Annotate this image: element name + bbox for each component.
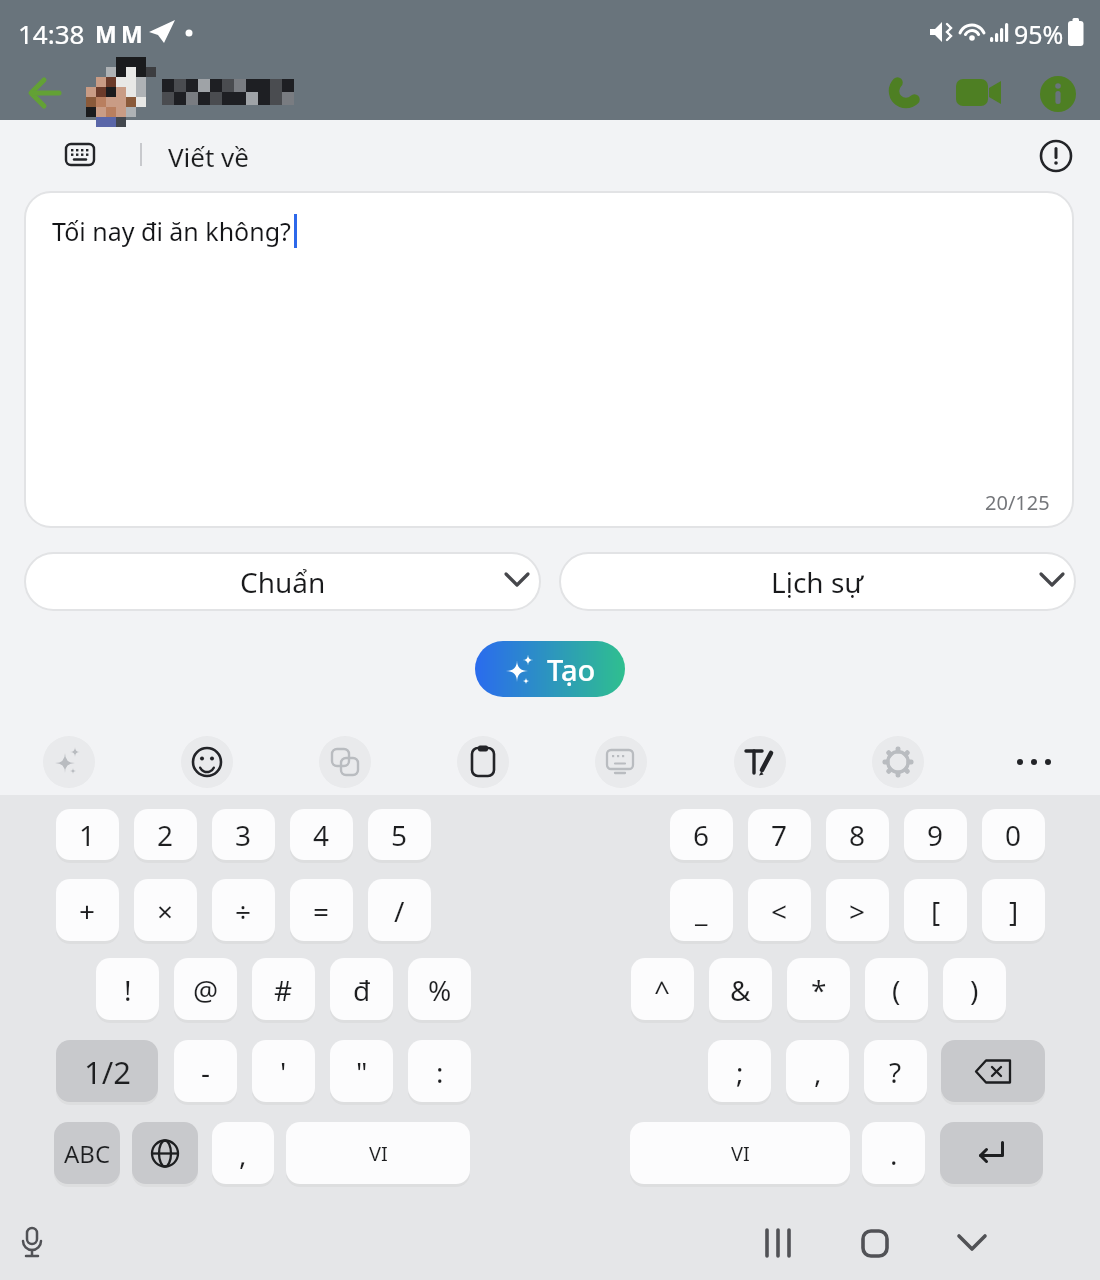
button[interactable]: / <box>368 879 431 942</box>
button[interactable]: ! <box>96 958 159 1021</box>
staticText: , <box>814 1053 822 1091</box>
staticText: Tối nay đi ăn không? <box>52 214 291 248</box>
button[interactable] <box>849 1217 901 1269</box>
button[interactable]: ABC <box>54 1122 120 1185</box>
button[interactable]: - <box>174 1040 237 1103</box>
staticText: 4 <box>313 816 330 854</box>
button[interactable]: % <box>408 958 471 1021</box>
staticText: 2 <box>157 816 174 854</box>
staticText: 20/125 <box>985 489 1050 516</box>
button[interactable]: Chuẩn <box>25 553 540 610</box>
button[interactable]: , <box>212 1122 274 1185</box>
button[interactable]: 7 <box>748 809 811 861</box>
staticText: VI <box>369 1140 388 1167</box>
staticText: 5 <box>391 816 408 854</box>
button[interactable]: , <box>786 1040 849 1103</box>
staticText: / <box>394 892 405 930</box>
button[interactable] <box>734 736 786 788</box>
button[interactable] <box>595 736 647 788</box>
button[interactable] <box>940 1122 1043 1185</box>
button[interactable]: _ <box>670 879 733 942</box>
button[interactable] <box>946 1217 998 1269</box>
staticText: × <box>157 892 174 930</box>
staticText: 0 <box>1005 816 1022 854</box>
button[interactable]: 6 <box>670 809 733 861</box>
staticText: 6 <box>693 816 710 854</box>
button[interactable]: + <box>56 879 119 942</box>
button[interactable] <box>872 736 924 788</box>
button[interactable]: < <box>748 879 811 942</box>
staticText: , <box>239 1135 247 1173</box>
button[interactable]: Lịch sự <box>560 553 1075 610</box>
button[interactable]: ? <box>864 1040 927 1103</box>
button[interactable] <box>8 1220 56 1268</box>
button[interactable]: # <box>252 958 315 1021</box>
staticText: Viết về <box>168 139 249 174</box>
staticText: 14:38 <box>18 16 85 51</box>
button[interactable]: . <box>862 1122 925 1185</box>
button[interactable]: Tạo <box>475 641 625 697</box>
button[interactable] <box>319 736 371 788</box>
staticText: ] <box>1009 892 1019 930</box>
button[interactable]: = <box>290 879 353 942</box>
button[interactable]: * <box>787 958 850 1021</box>
button[interactable]: 9 <box>904 809 967 861</box>
staticText: ( <box>892 971 901 1009</box>
staticText: ' <box>280 1053 287 1091</box>
staticText: M <box>121 18 143 49</box>
staticText: ? <box>889 1053 902 1091</box>
button[interactable]: × <box>134 879 197 942</box>
button[interactable]: 2 <box>134 809 197 861</box>
button[interactable] <box>52 132 108 178</box>
button[interactable] <box>457 736 509 788</box>
button[interactable] <box>181 736 233 788</box>
button[interactable]: VI <box>630 1122 850 1185</box>
button[interactable]: 1 <box>56 809 119 861</box>
staticText: Lịch sự <box>771 563 864 601</box>
staticText: " <box>356 1053 368 1091</box>
button[interactable] <box>1030 66 1086 122</box>
staticText: + <box>79 892 96 930</box>
staticText: 8 <box>849 816 866 854</box>
button[interactable]: > <box>826 879 889 942</box>
button[interactable]: ' <box>252 1040 315 1103</box>
staticText: ) <box>970 971 979 1009</box>
button[interactable] <box>43 736 95 788</box>
staticText: ABC <box>64 1137 111 1170</box>
staticText: : <box>436 1053 444 1091</box>
staticText: đ <box>353 971 371 1009</box>
button[interactable]: [ <box>904 879 967 942</box>
button[interactable] <box>1032 132 1080 180</box>
staticText: ; <box>736 1053 744 1091</box>
button[interactable]: ÷ <box>212 879 275 942</box>
staticText: ÷ <box>235 892 252 930</box>
button[interactable]: 8 <box>826 809 889 861</box>
button[interactable] <box>878 66 934 122</box>
staticText: [ <box>931 892 941 930</box>
button[interactable]: 1/2 <box>56 1040 158 1103</box>
button[interactable]: VI <box>286 1122 470 1185</box>
button[interactable] <box>1008 736 1060 788</box>
button[interactable]: đ <box>330 958 393 1021</box>
button[interactable]: " <box>330 1040 393 1103</box>
button[interactable]: @ <box>174 958 237 1021</box>
button[interactable]: Tối nay đi ăn không? <box>25 192 1073 527</box>
button[interactable]: & <box>709 958 772 1021</box>
staticText: 7 <box>771 816 788 854</box>
button[interactable]: ; <box>708 1040 771 1103</box>
button[interactable] <box>752 1217 804 1269</box>
staticText: Tạo <box>547 650 596 689</box>
button[interactable]: 0 <box>982 809 1045 861</box>
button[interactable]: ] <box>982 879 1045 942</box>
button[interactable]: : <box>408 1040 471 1103</box>
button[interactable] <box>941 1040 1045 1103</box>
button[interactable]: 3 <box>212 809 275 861</box>
button[interactable] <box>950 66 1006 122</box>
button[interactable]: 4 <box>290 809 353 861</box>
button[interactable]: 5 <box>368 809 431 861</box>
button[interactable]: ) <box>943 958 1006 1021</box>
button[interactable]: ( <box>865 958 928 1021</box>
button[interactable]: ^ <box>631 958 694 1021</box>
button[interactable] <box>14 62 74 122</box>
button[interactable] <box>132 1122 198 1185</box>
